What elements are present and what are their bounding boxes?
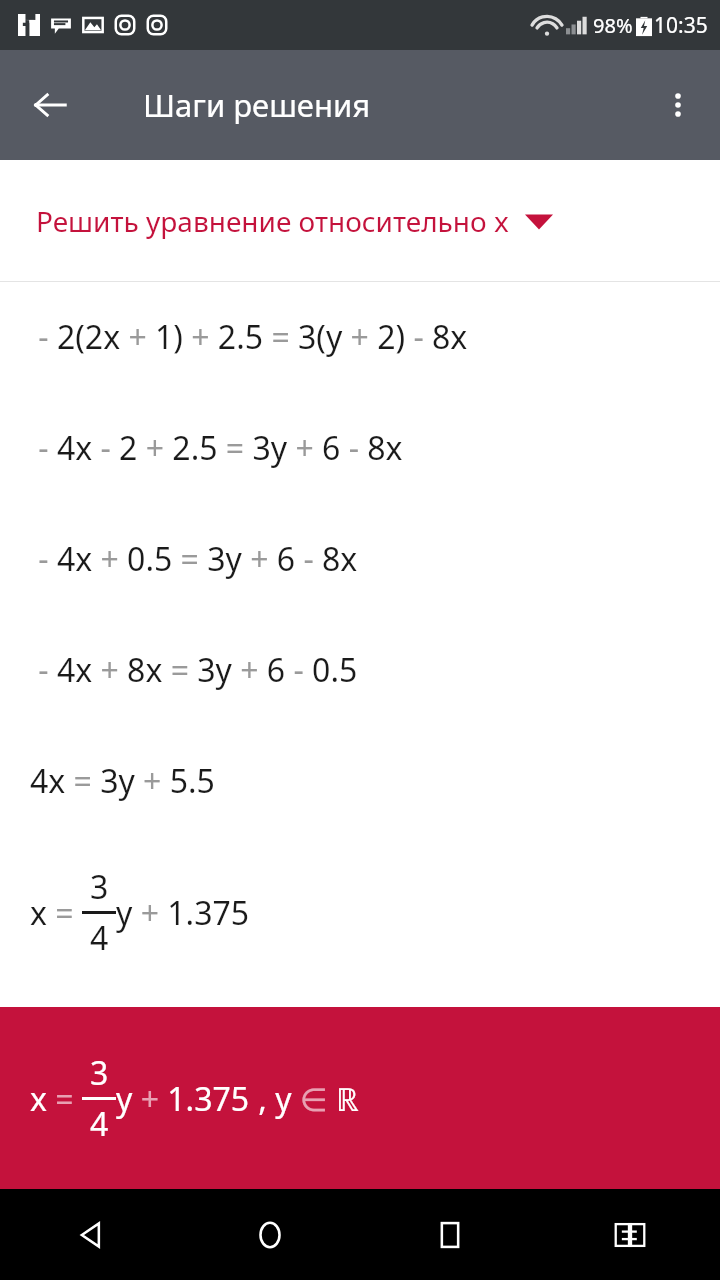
staticText: 4x = 3y + 5.5 xyxy=(30,759,215,803)
staticText: 3 xyxy=(90,1051,109,1095)
staticText: - 4x + 8x = 3y + 6 - 0.5 xyxy=(30,648,358,692)
staticText: - 2(2x + 1) + 2.5 = 3(y + 2) - 8x xyxy=(30,315,468,359)
staticText: 3 xyxy=(90,865,109,909)
button[interactable]: Решить уравнение относительно x xyxy=(0,160,720,281)
staticText: y + 1.375 xyxy=(116,1077,250,1121)
staticText: , y ∈ ℝ xyxy=(250,1077,359,1121)
staticText: 10:35 xyxy=(654,11,708,40)
staticText: - 4x - 2 + 2.5 = 3y + 6 - 8x xyxy=(30,426,403,470)
button[interactable]: Recents xyxy=(360,1189,540,1280)
button[interactable]: More options xyxy=(652,79,704,131)
staticText: 4 xyxy=(90,916,109,960)
staticText: x = xyxy=(30,1077,82,1121)
staticText: 4 xyxy=(90,1102,109,1146)
button[interactable]: Rotate xyxy=(540,1189,720,1280)
button[interactable]: x = xyxy=(0,1007,720,1189)
staticText: Шаги решения xyxy=(143,84,371,126)
button[interactable]: Home xyxy=(180,1189,360,1280)
staticText: x = xyxy=(30,891,82,935)
staticText: y + 1.375 xyxy=(116,891,250,935)
staticText: Решить уравнение относительно x xyxy=(36,202,509,240)
staticText: - 4x + 0.5 = 3y + 6 - 8x xyxy=(30,537,358,581)
staticText: 98% xyxy=(593,12,633,39)
button[interactable]: Back xyxy=(26,81,74,129)
button[interactable]: Back xyxy=(0,1189,180,1280)
